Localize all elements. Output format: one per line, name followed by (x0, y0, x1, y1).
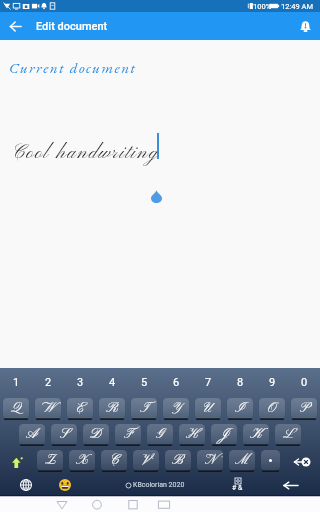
staticText: L (283, 426, 294, 443)
button[interactable]: E (67, 398, 93, 419)
button[interactable]: H (179, 424, 205, 445)
button[interactable]: 3 (64, 368, 96, 397)
staticText: 0 (301, 376, 308, 389)
staticText: Q (11, 400, 21, 417)
staticText: Cool handwriting (12, 141, 160, 166)
staticText: K (250, 426, 262, 443)
staticText: W (42, 400, 54, 417)
staticText: 8 (237, 376, 244, 389)
button[interactable]: Space (90, 475, 220, 495)
staticText: 5 (141, 376, 148, 389)
staticText: 2 (45, 376, 52, 389)
staticText: T (140, 400, 148, 417)
button[interactable]: Notifications (290, 12, 320, 40)
button[interactable]: Enter (275, 475, 307, 495)
staticText: 12:49 AM (281, 2, 313, 11)
staticText: I (235, 400, 245, 417)
button[interactable]: J (211, 424, 237, 445)
button[interactable]: X (69, 450, 95, 471)
staticText: # & (232, 484, 243, 492)
button[interactable]: T (131, 398, 157, 419)
button[interactable]: Z (37, 450, 63, 471)
button[interactable]: 2 (32, 368, 64, 397)
button[interactable] (261, 450, 280, 471)
staticText: M (235, 452, 249, 469)
button[interactable]: Backspace (283, 449, 320, 475)
button[interactable]: 0 (288, 368, 320, 397)
staticText: V (142, 452, 150, 469)
staticText: J (220, 426, 229, 443)
button[interactable]: O (259, 398, 285, 419)
staticText: 7 (205, 376, 212, 389)
button[interactable]: W (35, 398, 61, 419)
button[interactable]: M (229, 450, 255, 471)
staticText: E (77, 400, 84, 417)
staticText: R (106, 400, 119, 417)
button[interactable]: S (51, 424, 77, 445)
button[interactable]: 6 (160, 368, 192, 397)
button[interactable]: Q (3, 398, 29, 419)
button[interactable]: V (133, 450, 159, 471)
staticText: C (110, 452, 119, 469)
staticText: F (124, 426, 133, 443)
staticText: 6 (173, 376, 180, 389)
staticText: B (172, 452, 184, 469)
button[interactable]: A (19, 424, 45, 445)
staticText: H (186, 426, 198, 443)
staticText: 9 (269, 376, 276, 389)
button[interactable]: P (291, 398, 317, 419)
button[interactable]: 9 (256, 368, 288, 397)
button[interactable]: Shift (0, 449, 34, 475)
button[interactable]: F (115, 424, 141, 445)
button[interactable]: Y (163, 398, 189, 419)
staticText: A (26, 426, 38, 443)
button[interactable]: Emoji (49, 475, 81, 495)
button[interactable]: Change language (8, 475, 44, 495)
button[interactable]: 1 (0, 368, 32, 397)
button[interactable]: K (243, 424, 269, 445)
staticText: 3 (77, 376, 84, 389)
staticText: 1 (13, 376, 20, 389)
button[interactable]: B (165, 450, 191, 471)
button[interactable]: 5 (128, 368, 160, 397)
button[interactable]: C (101, 450, 127, 471)
staticText: Y (172, 400, 181, 417)
staticText: Edit document (36, 20, 108, 33)
staticText: KBcolorian 2020 (133, 481, 185, 489)
staticText: X (76, 452, 88, 469)
button[interactable]: D (83, 424, 109, 445)
staticText: Z (45, 452, 56, 469)
button[interactable]: R (99, 398, 125, 419)
staticText: U (204, 400, 212, 417)
button[interactable]: N (197, 450, 223, 471)
staticText: S (60, 426, 68, 443)
button[interactable]: I (227, 398, 253, 419)
staticText: 100% (253, 2, 272, 11)
staticText: 4 (109, 376, 116, 389)
button[interactable]: Symbols (221, 475, 253, 495)
button[interactable]: L (275, 424, 301, 445)
button[interactable]: 4 (96, 368, 128, 397)
button[interactable]: G (147, 424, 173, 445)
staticText: G (156, 426, 164, 443)
button[interactable]: Back (0, 12, 30, 40)
staticText: O (268, 400, 276, 417)
staticText: N (205, 452, 216, 469)
staticText: Current document (9, 58, 137, 78)
button[interactable]: 8 (224, 368, 256, 397)
staticText: D (90, 426, 102, 443)
button[interactable]: U (195, 398, 221, 419)
staticText: P (300, 400, 309, 417)
button[interactable]: 7 (192, 368, 224, 397)
